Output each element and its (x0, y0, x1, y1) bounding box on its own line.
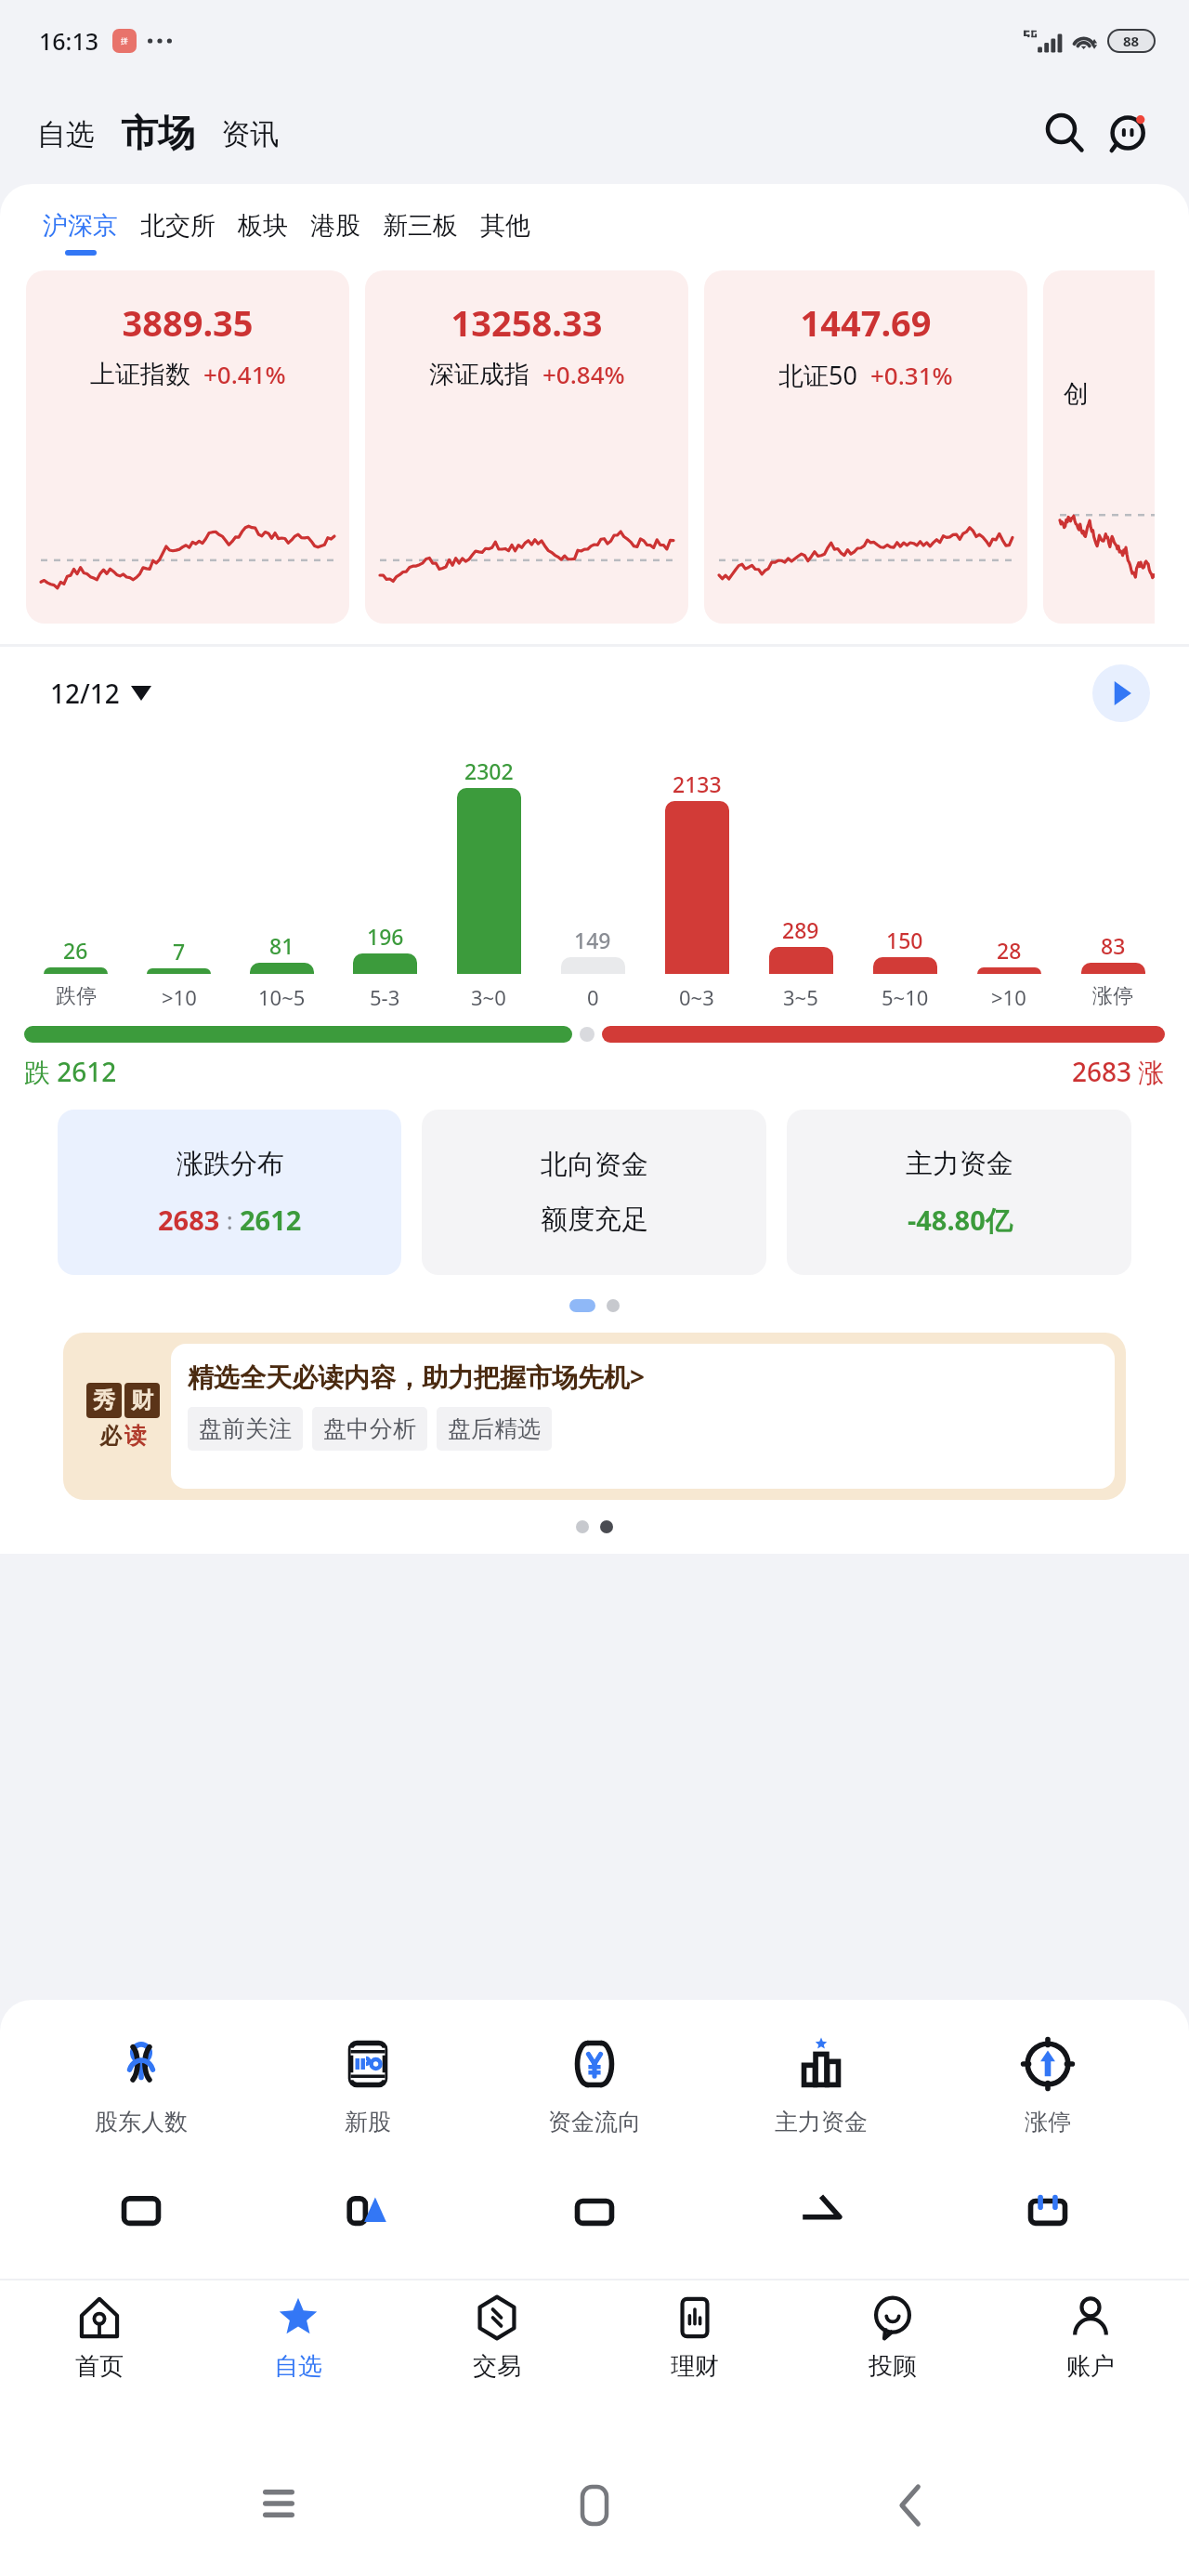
button[interactable]: 资金流向 (481, 2033, 708, 2136)
button[interactable]: 投顾 (793, 2292, 991, 2435)
staticText: 3~5 (783, 983, 818, 1011)
staticText: 83 (1101, 931, 1126, 960)
staticText: 北向资金 (541, 1148, 648, 1182)
button[interactable]: Home (557, 2468, 632, 2543)
button[interactable] (255, 2161, 481, 2222)
staticText: 5-3 (370, 983, 400, 1011)
button[interactable]: 账户 (991, 2292, 1189, 2435)
staticText: 主力资金 (906, 1147, 1013, 1181)
button[interactable]: 首页 (0, 2292, 199, 2435)
staticText: 板块 (238, 210, 288, 242)
button[interactable] (28, 2161, 255, 2222)
staticText: 196 (367, 922, 404, 951)
button[interactable]: 自选 (33, 111, 98, 158)
button[interactable]: 主力资金 (787, 1110, 1131, 1275)
staticText: 2683 涨 (1072, 1054, 1165, 1089)
staticText: 2683 (158, 1202, 220, 1238)
staticText: 1447.69 (704, 298, 1027, 347)
staticText: 盘中分析 (323, 1414, 416, 1443)
staticText: 2612 (240, 1202, 302, 1238)
staticText: 0 (587, 983, 599, 1011)
button[interactable]: 涨停 (934, 2033, 1161, 2136)
staticText: 自选 (37, 116, 95, 152)
staticText: : (220, 1203, 240, 1236)
button[interactable] (481, 2161, 708, 2222)
button[interactable]: 沪深京 (32, 210, 129, 256)
button[interactable]: 新三板 (372, 210, 469, 256)
staticText: 新股 (345, 2108, 391, 2136)
staticText: 跌停 (56, 983, 97, 1009)
button[interactable]: 新股 (255, 2033, 481, 2136)
staticText: +0.84% (542, 358, 625, 390)
staticText: 额度充足 (541, 1203, 648, 1237)
button[interactable]: 市场 (117, 108, 199, 158)
button[interactable] (708, 2161, 934, 2222)
staticText: 理财 (671, 2351, 719, 2382)
button[interactable]: Search (1035, 103, 1094, 163)
staticText: -48.80亿 (908, 1202, 1013, 1239)
staticText: 13258.33 (365, 298, 688, 347)
button[interactable]: 板块 (227, 210, 299, 256)
staticText: +0.41% (203, 358, 286, 390)
staticText: 10~5 (258, 983, 306, 1011)
button[interactable]: 自选 (199, 2292, 398, 2435)
button[interactable]: 12/12 (50, 676, 151, 711)
button[interactable]: Back (873, 2468, 947, 2543)
staticText: 150 (886, 926, 923, 954)
staticText: 3889.35 (26, 298, 349, 347)
button[interactable]: 北向资金 (422, 1110, 766, 1275)
button[interactable]: Messages (1100, 103, 1159, 163)
button[interactable]: 主力资金 (708, 2033, 934, 2136)
staticText: 3~0 (471, 983, 506, 1011)
staticText: 港股 (310, 210, 360, 242)
button[interactable]: 1447.69 (704, 270, 1027, 624)
staticText: 289 (782, 915, 819, 944)
button[interactable]: 秀 (63, 1333, 1126, 1500)
staticText: 必 (99, 1422, 122, 1450)
staticText: 资讯 (221, 116, 279, 152)
button[interactable]: Play (1092, 664, 1150, 722)
button[interactable]: 3889.35 (26, 270, 349, 624)
staticText: 深证成指 (429, 359, 529, 390)
staticText: 沪深京 (43, 210, 118, 242)
staticText: 0~3 (679, 983, 714, 1011)
button[interactable] (934, 2161, 1161, 2222)
staticText: 交易 (473, 2351, 521, 2382)
button[interactable]: 资讯 (217, 111, 282, 158)
staticText: >10 (991, 983, 1026, 1011)
staticText: 账户 (1066, 2351, 1115, 2382)
button[interactable]: 其他 (469, 210, 542, 256)
button[interactable]: 创 (1043, 270, 1155, 624)
staticText: 其他 (480, 210, 530, 242)
button[interactable]: 港股 (299, 210, 372, 256)
staticText: 秀 (93, 1387, 115, 1414)
staticText: 市场 (121, 110, 195, 156)
staticText: 5~10 (882, 983, 929, 1011)
button[interactable]: 股东人数 (28, 2033, 255, 2136)
staticText: 2302 (464, 756, 514, 785)
button[interactable]: 北交所 (129, 210, 227, 256)
button[interactable]: 13258.33 (365, 270, 688, 624)
button[interactable]: 理财 (595, 2292, 793, 2435)
button[interactable]: Recents (242, 2468, 316, 2543)
staticText: 26 (63, 936, 88, 965)
button[interactable]: 涨跌分布 (58, 1110, 401, 1275)
staticText: +0.31% (870, 359, 953, 391)
button[interactable]: 盘中分析 (312, 1407, 427, 1451)
staticText: 拼 (121, 36, 128, 46)
staticText: >10 (162, 983, 197, 1011)
staticText: 财 (131, 1387, 153, 1414)
staticText: 上证指数 (90, 359, 190, 390)
staticText: 盘后精选 (448, 1414, 541, 1443)
staticText: 涨停 (1025, 2108, 1071, 2136)
staticText: 新三板 (383, 210, 458, 242)
button[interactable]: 盘后精选 (437, 1407, 552, 1451)
staticText: 北交所 (140, 210, 216, 242)
staticText: 149 (574, 926, 611, 954)
staticText: 12/12 (50, 676, 120, 711)
button[interactable]: 交易 (398, 2292, 595, 2435)
staticText: 自选 (274, 2351, 322, 2382)
staticText: 跌 2612 (24, 1054, 117, 1089)
staticText: 创 (1064, 378, 1089, 410)
button[interactable]: 盘前关注 (188, 1407, 303, 1451)
